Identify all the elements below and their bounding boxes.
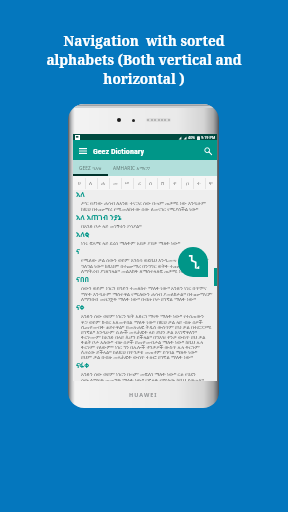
staticText: Navigation with sorted alphabets (Both v… xyxy=(0,31,288,88)
button[interactable]: ሀ xyxy=(73,176,85,190)
button[interactable]: Open navigation menu xyxy=(77,145,88,156)
button[interactable]: Search xyxy=(202,145,213,156)
button[interactable]: በ xyxy=(181,176,193,190)
staticText: 9:19 PM xyxy=(201,135,216,140)
button[interactable]: መ xyxy=(109,176,121,190)
staticText: አንድን ሰው ወይም ነገርን ዝቅ አድርገ ማየት ማለት ነው። የተሰ… xyxy=(81,313,212,361)
button[interactable]: አለቂ xyxy=(76,230,215,240)
button[interactable]: ሐ xyxy=(97,176,109,190)
button[interactable]: ናበበ xyxy=(76,275,215,285)
staticText: ሀ xyxy=(78,181,81,186)
staticText: ረ xyxy=(138,181,141,186)
button[interactable]: ሠ xyxy=(121,176,133,190)
staticText: ተ xyxy=(197,181,201,186)
staticText: ለ xyxy=(89,181,93,186)
button[interactable]: ናቀ xyxy=(76,303,215,313)
staticText: 40% xyxy=(188,135,196,140)
staticText: ሠ xyxy=(125,181,130,186)
button[interactable]: አለ አጠገብ ንያኔ xyxy=(76,213,215,223)
staticText: ሰ xyxy=(149,181,153,186)
button[interactable]: ሰ xyxy=(145,176,157,190)
button[interactable]: ተ xyxy=(193,176,205,190)
button[interactable]: አለ xyxy=(76,190,215,200)
staticText: ሸ xyxy=(161,181,165,186)
staticText: ሰውን ወይም ነገርን በዓይን ተመለከተ ማለት ነው። አንድን ነገር… xyxy=(81,285,213,303)
staticText: ሥር የሆነው ሐሳብ ለአንድ ተናጋሪ ሰው በጣም ጠቃሚ ነው እንዲሁ… xyxy=(81,200,206,213)
button[interactable]: ና xyxy=(76,247,215,257)
staticText: ነገሩ ፍጻሜ ላይ ደረሰ ማለትም አበቃ ያበቃ ማለት ነው። xyxy=(81,240,181,247)
staticText: አንድን ሰው ወይም ነገርን በጣም መፍለገ ማለት ነው። ርቆ የሄደ… xyxy=(81,371,204,381)
button[interactable]: ለ xyxy=(85,176,97,190)
button[interactable]: ቀ xyxy=(169,176,181,190)
button[interactable]: AMHARIC አማርኛ xyxy=(108,160,156,176)
staticText: HUAWEI xyxy=(129,391,158,398)
staticText: በ xyxy=(186,181,189,186)
button[interactable]: ናፋቀ xyxy=(76,361,215,371)
button[interactable]: ረ xyxy=(133,176,145,190)
staticText: ቀ xyxy=(173,181,177,186)
staticText: የሚለው ቃል ሰውን ወይም እንስሳ ወደዚህ እንዲመጣ ለመጥራት የሚ… xyxy=(81,257,209,275)
staticText: ቸ xyxy=(209,181,213,186)
button[interactable]: GEEZ ግእዝ xyxy=(73,160,108,176)
staticText: በአንድ ቦታ ላይ መገኝቱን ያሳያል። xyxy=(81,223,142,230)
staticText: AMHARIC አማርኛ xyxy=(113,165,151,171)
staticText: ሐ xyxy=(101,181,106,186)
button[interactable]: ቸ xyxy=(205,176,217,190)
button[interactable]: Add new word xyxy=(178,247,208,277)
staticText: Geez Dictionary xyxy=(93,146,145,155)
staticText: GEEZ ግእዝ xyxy=(79,165,102,171)
staticText: መ xyxy=(113,181,118,186)
button[interactable]: ሸ xyxy=(157,176,169,190)
